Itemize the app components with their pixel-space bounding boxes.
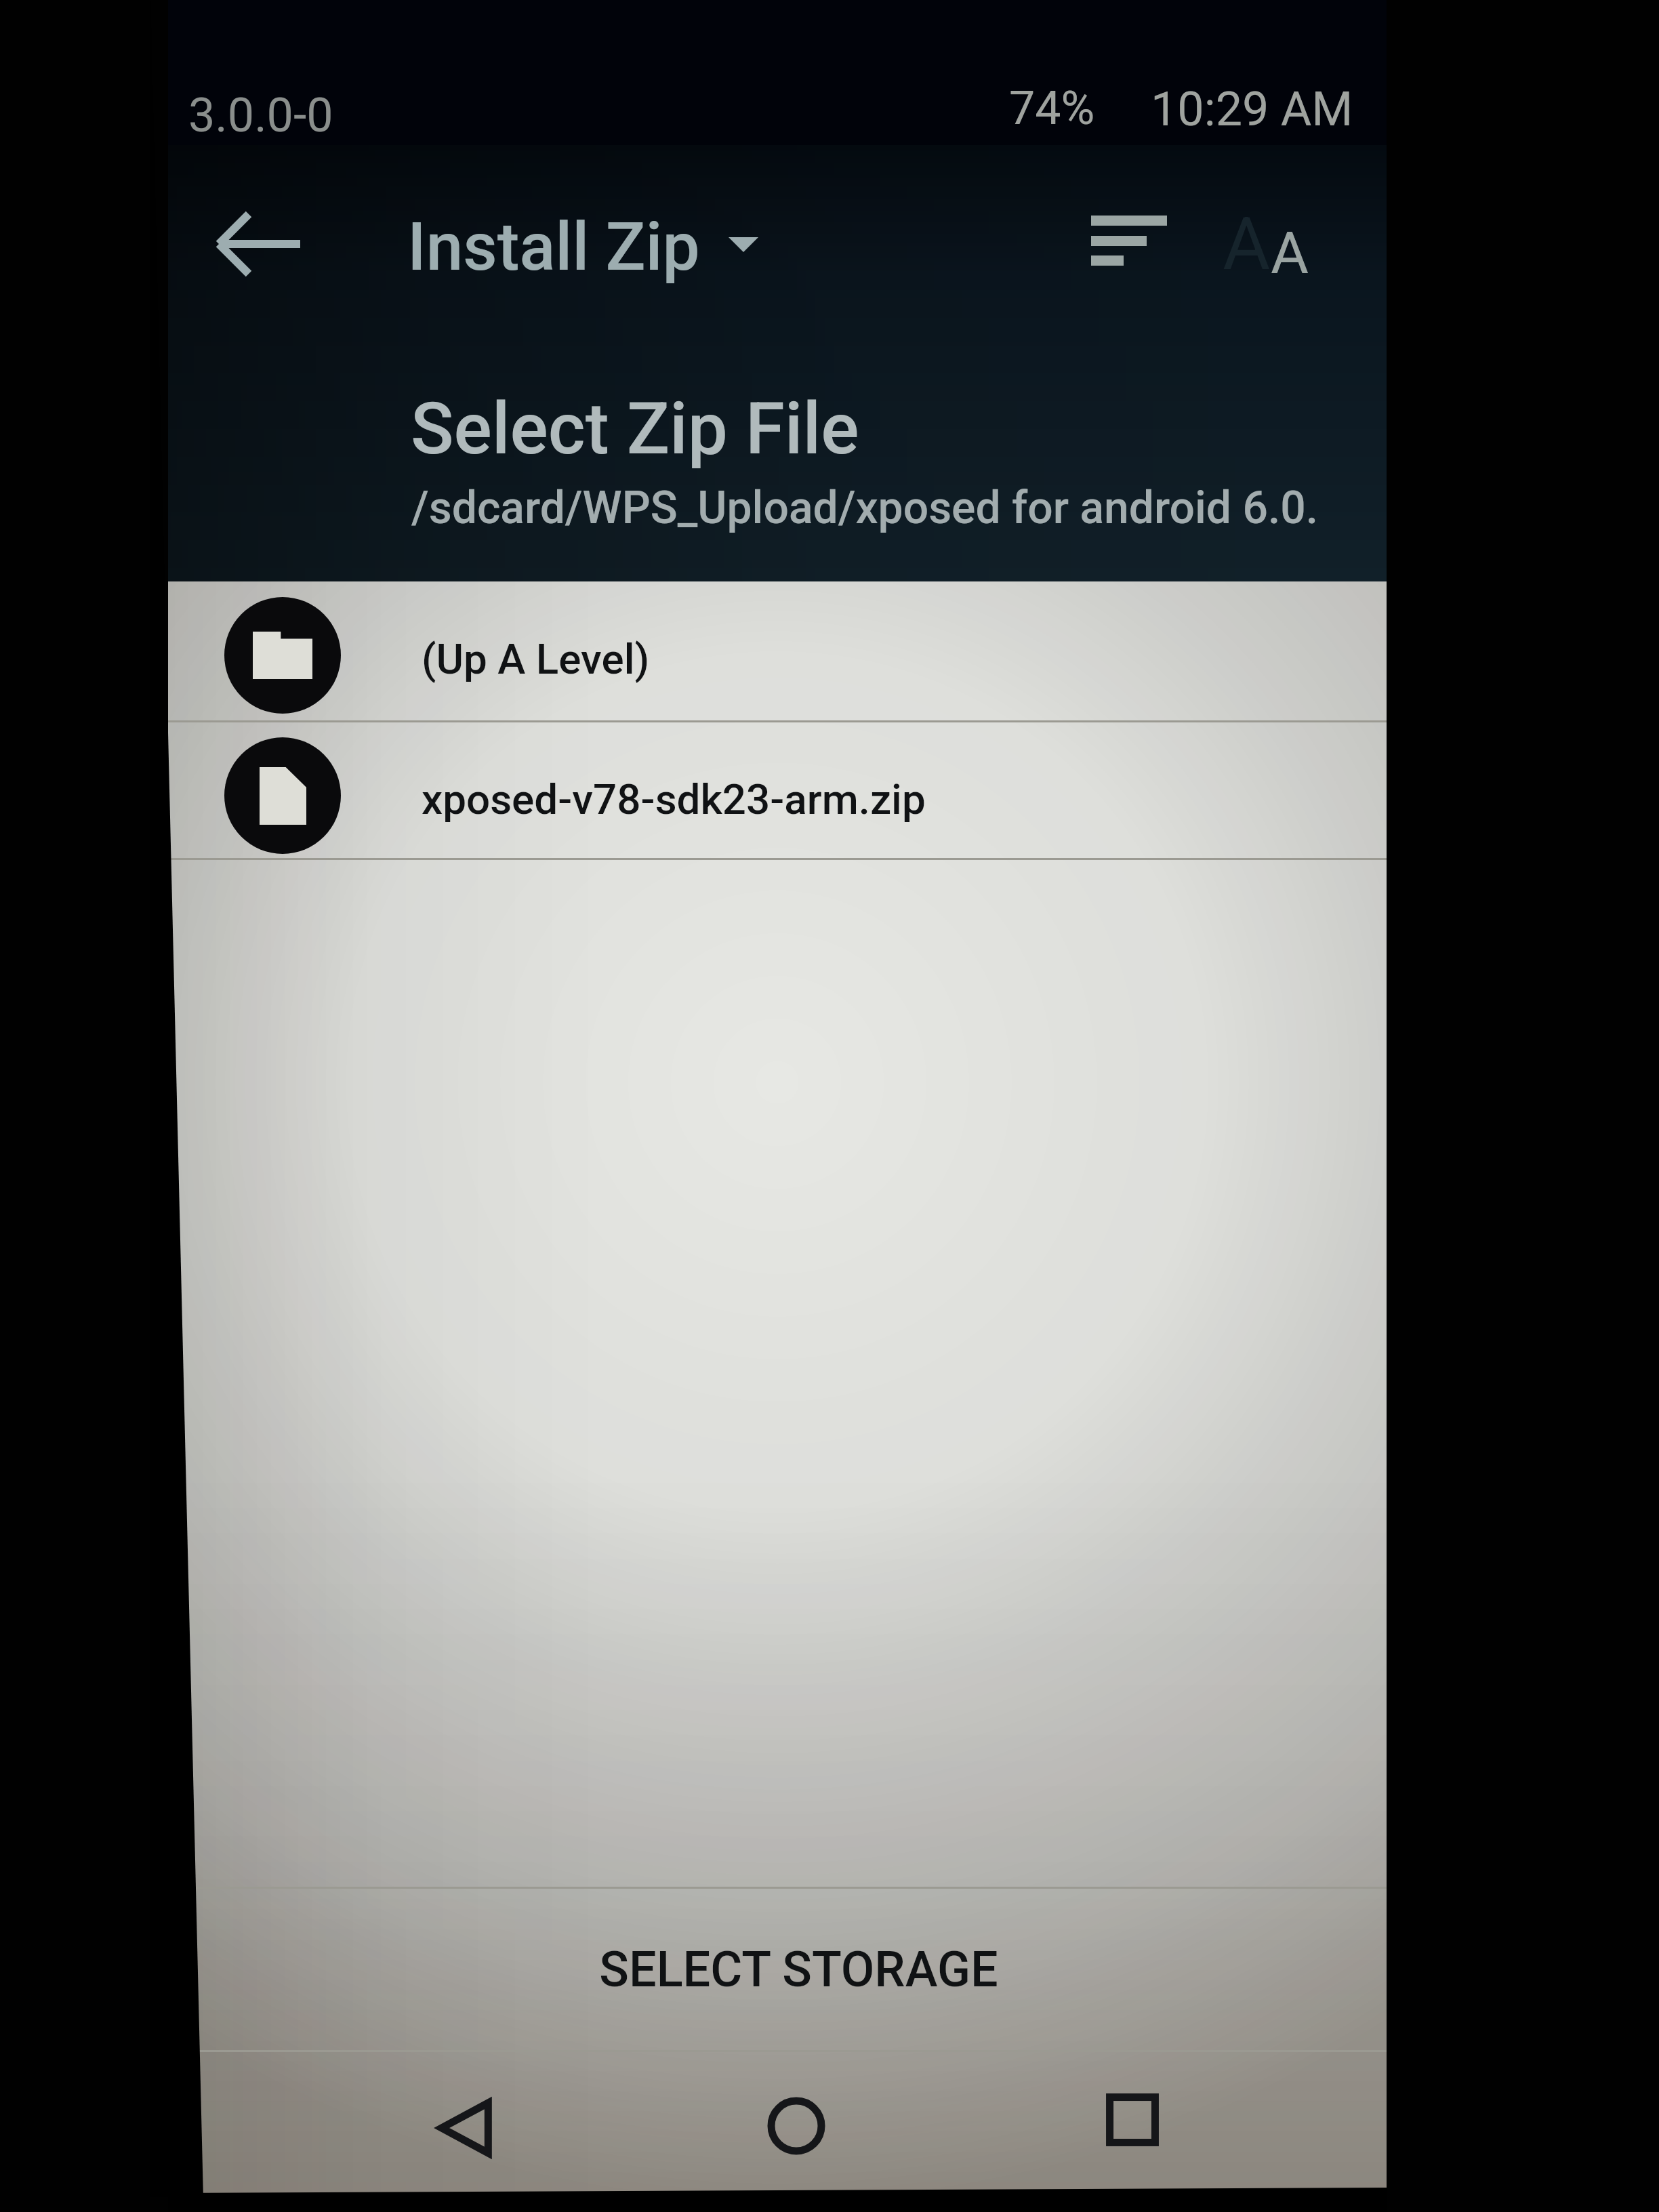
button[interactable]: Back [407, 2070, 523, 2186]
staticText: 74% [1009, 81, 1095, 136]
staticText: A [1271, 219, 1309, 287]
button[interactable]: (Up A Level) [168, 581, 1387, 720]
button[interactable]: Install Zip [407, 186, 758, 308]
button[interactable]: SELECT STORAGE [168, 1889, 1387, 2050]
button[interactable]: Text size [1198, 176, 1334, 312]
staticText: Install Zip [407, 208, 700, 286]
staticText: SELECT STORAGE [599, 1941, 998, 1998]
staticText: A [1223, 201, 1271, 287]
button[interactable]: Sort [1036, 175, 1171, 310]
staticText: (Up A Level) [422, 634, 650, 684]
button[interactable]: Navigate up [199, 183, 321, 305]
button[interactable]: xposed-v78-sdk23-arm.zip [168, 722, 1387, 860]
staticText: xposed-v78-sdk23-arm.zip [422, 775, 926, 824]
staticText: /sdcard/WPS_Upload/xposed for android 6.… [411, 482, 1319, 534]
button[interactable]: Recent apps [1075, 2062, 1190, 2177]
button[interactable]: Home [739, 2068, 854, 2184]
staticText: Select Zip File [411, 388, 859, 471]
staticText: 3.0.0-0 [188, 87, 333, 143]
staticText: 10:29 AM [1151, 81, 1353, 137]
